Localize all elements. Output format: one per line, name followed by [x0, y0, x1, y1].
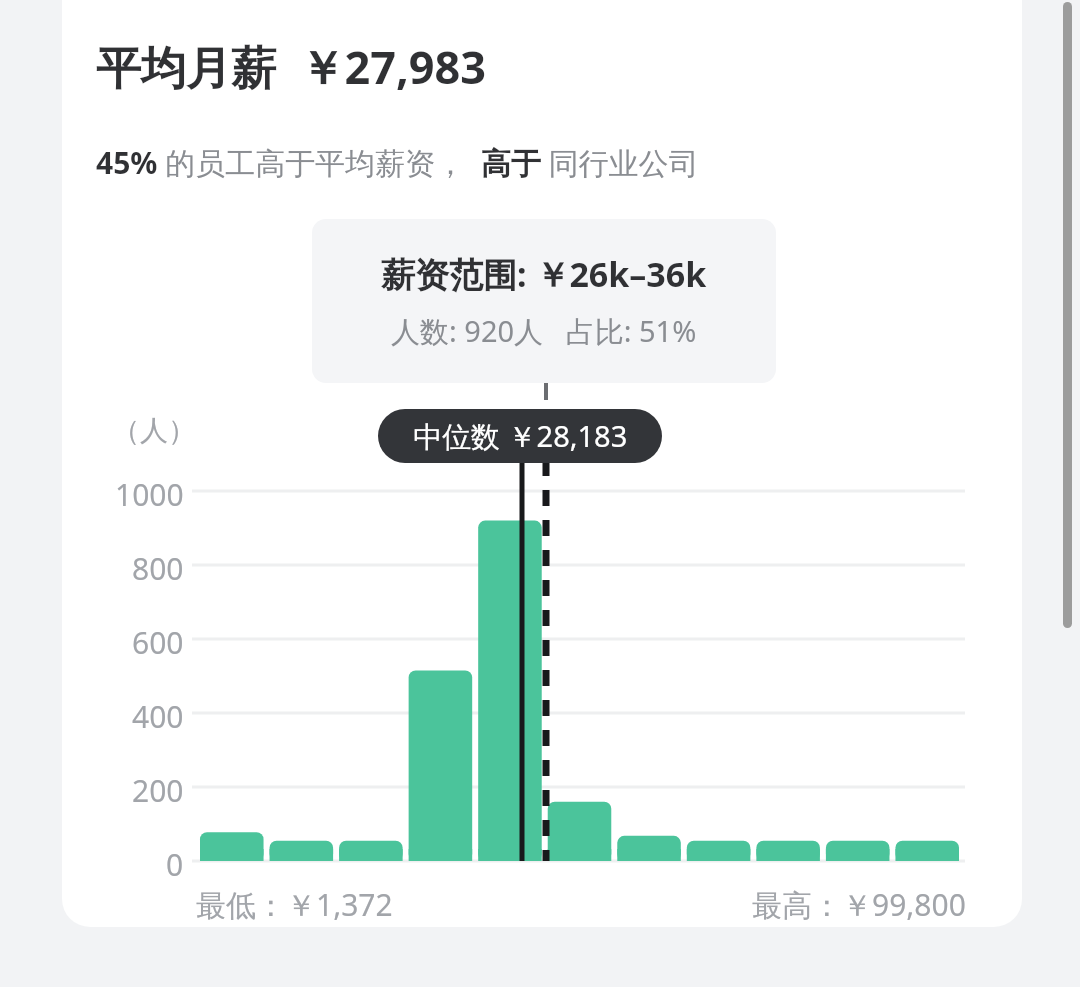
staticText: （人）	[112, 413, 196, 448]
button[interactable]: 中位数 ￥28,183	[378, 409, 662, 463]
staticText: 薪资范围: ￥26k–36k	[381, 251, 707, 297]
staticText: 中位数 ￥28,183	[413, 416, 628, 456]
staticText: 45% 的员工高于平均薪资， 高于 同行业公司	[96, 142, 699, 183]
staticText: 最高：￥99,800	[752, 884, 966, 925]
staticText: 600	[132, 622, 184, 663]
staticText: 最低：￥1,372	[196, 884, 393, 925]
staticText: 0	[166, 844, 184, 885]
other: Scrollbar	[1063, 2, 1072, 628]
staticText: 平均月薪 ￥27,983	[96, 36, 486, 97]
button[interactable]	[62, 0, 1022, 927]
staticText: 人数: 920人 占比: 51%	[391, 311, 697, 351]
staticText: 400	[132, 696, 184, 737]
staticText: 800	[132, 548, 184, 589]
button[interactable]: 薪资范围: ￥26k–36k	[312, 219, 776, 383]
staticText: 1000	[115, 474, 184, 515]
staticText: 200	[132, 770, 184, 811]
